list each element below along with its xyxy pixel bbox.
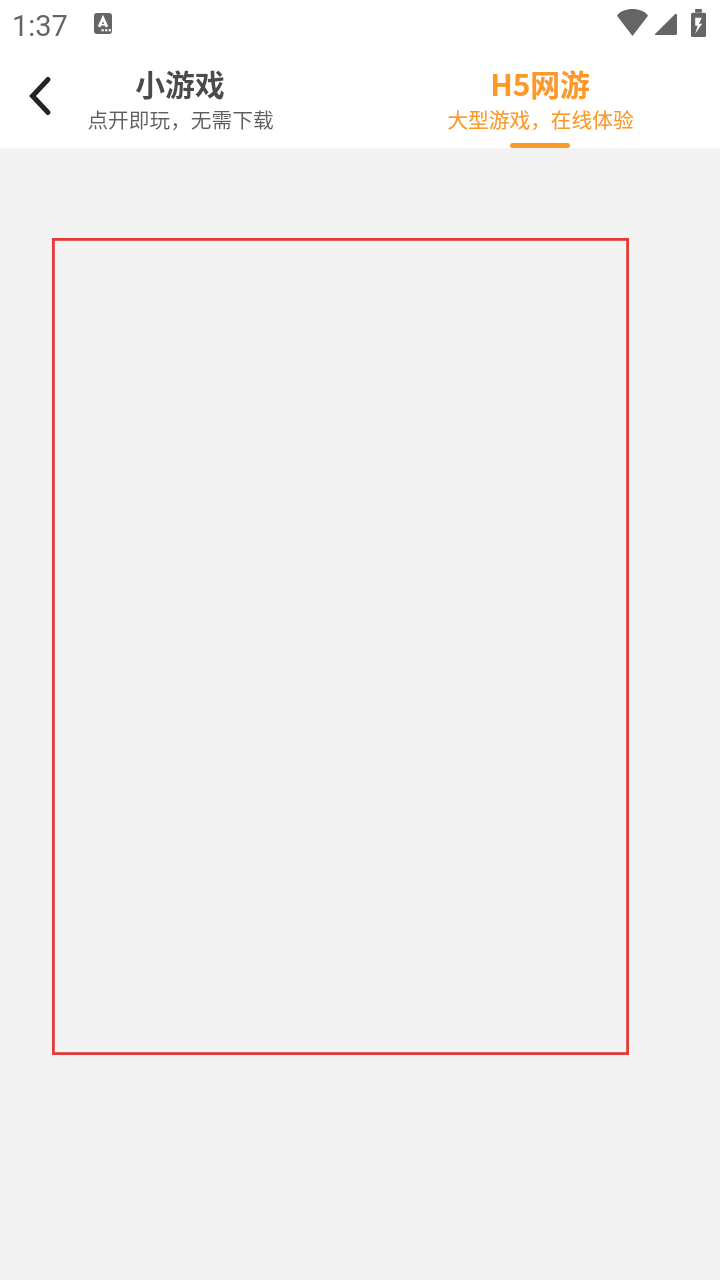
button[interactable]: H5网游 — [360, 48, 720, 148]
button[interactable]: 小游戏 — [0, 48, 360, 148]
staticText: 点开即玩，无需下载 — [87, 104, 274, 134]
staticText: 1:37 — [12, 9, 68, 43]
button[interactable]: Back — [0, 48, 80, 148]
staticText: H5网游 — [490, 61, 590, 101]
staticText: 大型游戏，在线体验 — [447, 104, 634, 134]
staticText: 小游戏 — [135, 61, 225, 101]
